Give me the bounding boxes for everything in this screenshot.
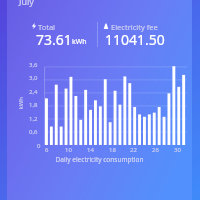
staticText: kWh [16,96,24,109]
staticText: Electricity fee [111,22,158,32]
staticText: 0,6 [29,128,38,136]
staticText: Total [38,22,56,32]
staticText: Daily electricity consumption [7,155,192,164]
staticText: 1,2 [29,115,38,123]
staticText: kWh [72,37,87,47]
staticText: 30 [174,146,181,154]
staticText: 2,4 [29,88,38,96]
staticText: 6 [45,146,49,154]
staticText: 3,6 [29,61,38,69]
staticText: 1,8 [29,101,38,109]
staticText: 26 [152,146,159,154]
staticText: 3,0 [29,74,38,82]
staticText: 11041.50 [105,30,165,49]
other: Total energy [31,23,37,29]
other: Electricity fee [103,23,109,29]
staticText: July [19,0,34,7]
staticText: 0 [37,142,41,150]
staticText: 73.61 [36,30,72,49]
staticText: 14 [87,146,94,154]
staticText: 18 [109,146,116,154]
staticText: 22 [130,146,137,154]
staticText: 10 [65,146,72,154]
